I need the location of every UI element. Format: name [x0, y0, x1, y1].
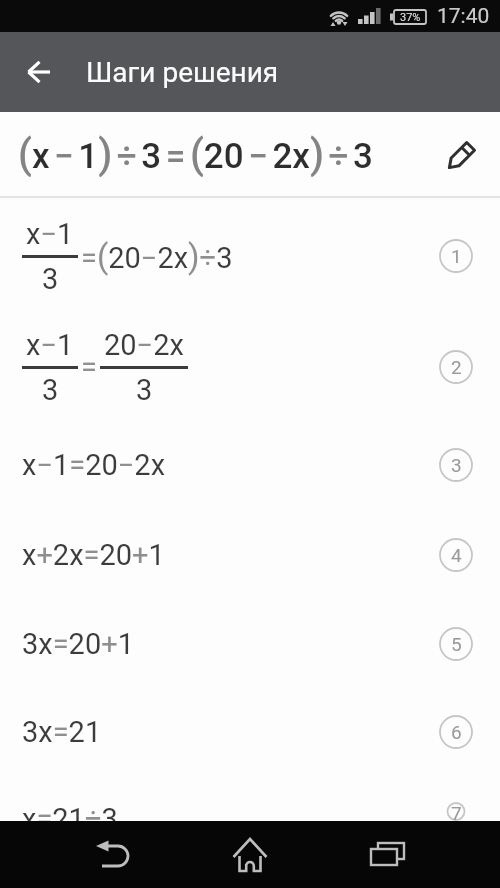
staticText: 3x=20+1 — [22, 627, 134, 661]
staticText: 4 — [451, 544, 462, 566]
staticText: 3 — [42, 262, 59, 296]
button[interactable]: x−1=20−2x — [0, 420, 500, 510]
staticText: = — [81, 350, 97, 384]
staticText: 3 — [42, 373, 59, 407]
staticText: x=21÷3 — [22, 802, 118, 821]
staticText: (x − 1) ÷ 3 = (20 − 2x) ÷ 3 — [18, 131, 373, 178]
button[interactable]: (x − 1) ÷ 3 = (20 − 2x) ÷ 3 — [0, 112, 500, 196]
button[interactable]: x−1 — [0, 198, 500, 314]
staticText: x−1 — [26, 328, 74, 362]
staticText: x+2x=20+1 — [22, 538, 165, 572]
button[interactable] — [228, 833, 272, 877]
button[interactable]: x=21÷3 — [0, 802, 500, 821]
staticText: 1 — [451, 245, 462, 267]
staticText: x−1 — [26, 217, 74, 251]
button[interactable]: 3x=21 — [0, 688, 500, 776]
staticText: 37% — [400, 11, 421, 24]
staticText: 5 — [451, 633, 462, 655]
button[interactable] — [17, 48, 65, 96]
staticText: 3 — [136, 373, 153, 407]
button[interactable]: 3x=20+1 — [0, 600, 500, 688]
button[interactable] — [93, 835, 133, 875]
staticText: =(20−2x)÷3 — [81, 237, 233, 276]
staticText: 3x=21 — [22, 715, 102, 749]
staticText: Шаги решения — [86, 56, 279, 89]
button[interactable] — [367, 835, 407, 875]
button[interactable]: x−1 — [0, 314, 500, 420]
button[interactable]: x+2x=20+1 — [0, 510, 500, 600]
staticText: 3 — [451, 454, 462, 476]
staticText: 17:40 — [437, 4, 490, 29]
staticText: 6 — [451, 721, 462, 743]
staticText: 2 — [451, 356, 462, 378]
staticText: x−1=20−2x — [22, 448, 166, 482]
staticText: 20−2x — [104, 328, 184, 362]
staticText: 7 — [451, 802, 462, 821]
